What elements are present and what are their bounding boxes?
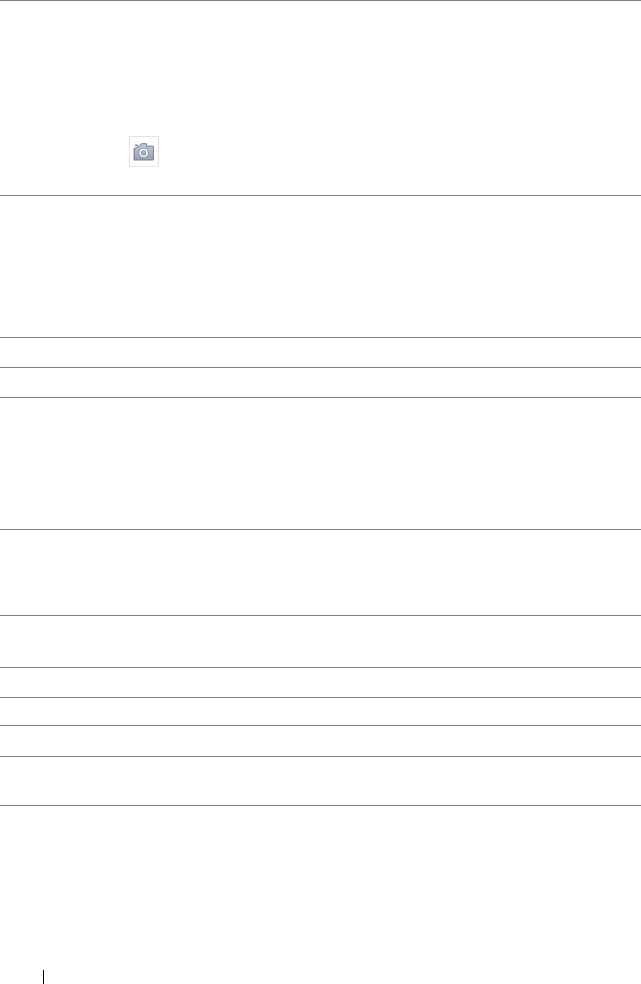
button[interactable]: Broken image placeholder [129,136,159,167]
